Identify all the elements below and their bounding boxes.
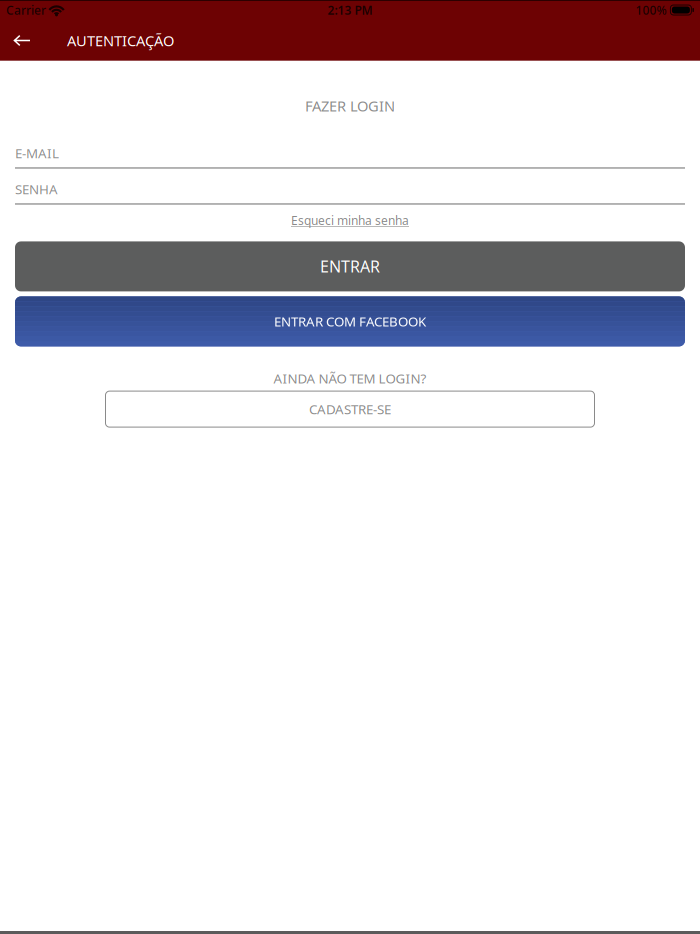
button[interactable]: ENTRAR COM FACEBOOK <box>15 296 685 346</box>
staticText: E-MAIL <box>15 144 59 162</box>
staticText: FAZER LOGIN <box>305 96 395 115</box>
staticText: ENTRAR COM FACEBOOK <box>274 313 426 330</box>
staticText: AUTENTICAÇÃO <box>67 31 174 50</box>
staticText: SENHA <box>15 180 58 198</box>
button[interactable]: Back <box>0 20 44 60</box>
button[interactable]: Esqueci minha senha <box>291 212 409 228</box>
button[interactable]: SENHA <box>15 177 685 204</box>
button[interactable]: E-MAIL <box>15 141 685 168</box>
button[interactable]: CADASTRE-SE <box>105 391 594 427</box>
staticText: ENTRAR <box>320 256 380 277</box>
staticText: 100% <box>635 2 666 18</box>
staticText: AINDA NÃO TEM LOGIN? <box>273 369 426 387</box>
staticText: CADASTRE-SE <box>309 400 391 418</box>
button[interactable]: ENTRAR <box>15 241 685 291</box>
staticText: Esqueci minha senha <box>291 212 409 228</box>
staticText: Carrier <box>6 2 46 18</box>
staticText: 2:13 PM <box>327 2 372 18</box>
